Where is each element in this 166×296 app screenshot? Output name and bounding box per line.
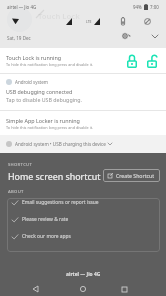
staticText: LTE: [86, 19, 92, 24]
staticText: SHORTCUT: [8, 162, 33, 168]
button[interactable]: Android system: [0, 74, 166, 110]
button[interactable]: LTE mobile data: [86, 11, 106, 31]
button[interactable]: Email suggestions or report issue: [7, 198, 160, 207]
staticText: Android system • USB charging this devic…: [15, 141, 106, 147]
button[interactable]: Touch Lock is running: [0, 48, 166, 73]
button[interactable]: Mute: [137, 11, 157, 31]
staticText: Tap to disable USB debugging.: [6, 96, 82, 103]
button[interactable]: Lock screen: [126, 53, 138, 69]
button[interactable]: Create Shortcut: [103, 169, 160, 182]
button[interactable]: Home: [72, 278, 94, 296]
staticText: Sat, 19 Dec: [7, 35, 31, 41]
staticText: To hide this notification long press and…: [6, 125, 94, 130]
staticText: Create Shortcut: [116, 172, 155, 179]
staticText: Home screen shortcut: [8, 170, 101, 182]
staticText: Email suggestions or report issue: [22, 199, 99, 206]
button[interactable]: Settings: [118, 29, 132, 43]
staticText: 7:00: [150, 4, 159, 10]
staticText: To hide this notification long press and…: [6, 62, 94, 67]
staticText: ABOUT: [8, 189, 24, 195]
button[interactable]: Please review & rate: [7, 207, 160, 224]
button[interactable]: Unlock screen: [146, 53, 158, 69]
button[interactable]: Wi-Fi: [5, 11, 25, 31]
button[interactable]: Back: [24, 278, 46, 296]
staticText: airtel — Jio 4G: [66, 271, 101, 278]
staticText: airtel — Jio 4G: [7, 4, 37, 10]
button[interactable]: Expand quick settings: [148, 29, 162, 43]
button[interactable]: Android system • USB charging this devic…: [0, 135, 166, 153]
staticText: Check our more apps: [22, 233, 71, 240]
staticText: Touch Lock: [38, 11, 80, 21]
button[interactable]: Simple App Locker is running: [0, 111, 166, 135]
staticText: Simple App Locker is running: [6, 117, 80, 124]
button[interactable]: Mobile signal: [59, 11, 79, 31]
staticText: Please review & rate: [22, 216, 69, 223]
staticText: Touch Lock is running: [6, 54, 62, 61]
button[interactable]: Recent apps: [113, 278, 135, 296]
staticText: 94%: [133, 4, 142, 10]
staticText: Android system: [15, 79, 48, 85]
button[interactable]: Check our more apps: [7, 224, 160, 241]
button[interactable]: Battery saver: [113, 11, 133, 31]
staticText: USB debugging connected: [6, 88, 73, 95]
